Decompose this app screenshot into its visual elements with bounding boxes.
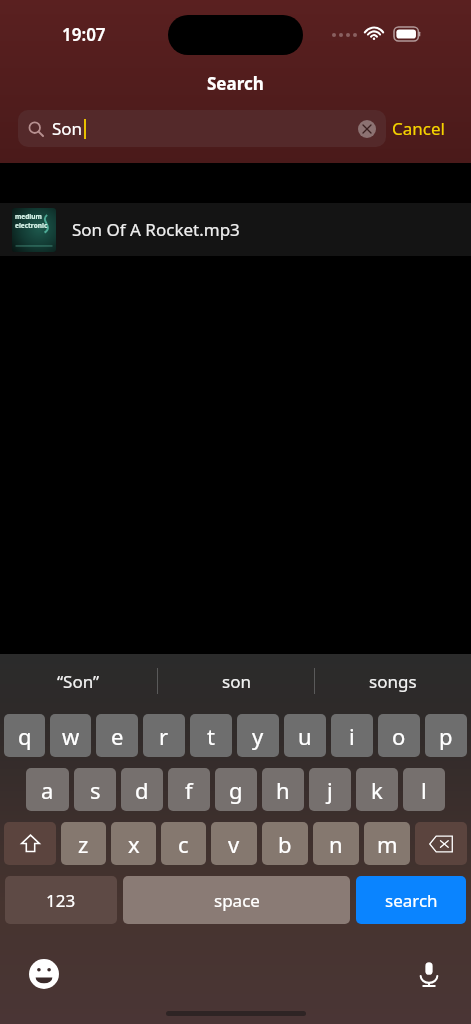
staticText: songs	[369, 670, 417, 693]
button[interactable]: v	[211, 822, 257, 865]
button[interactable]: Son	[18, 110, 386, 147]
button[interactable]: Emoji keyboard	[26, 956, 62, 992]
button[interactable]: o	[378, 714, 420, 757]
button[interactable]: f	[168, 768, 210, 811]
staticText: f	[185, 775, 193, 805]
staticText: w	[62, 721, 80, 751]
button[interactable]: b	[262, 822, 308, 865]
staticText: z	[78, 829, 89, 859]
staticText: m	[377, 829, 398, 859]
button[interactable]: k	[356, 768, 398, 811]
button[interactable]: Delete	[415, 822, 467, 865]
button[interactable]: search	[356, 876, 466, 924]
button[interactable]: Cancel	[392, 110, 462, 147]
button[interactable]: g	[215, 768, 257, 811]
staticText: u	[298, 721, 312, 751]
button[interactable]: space	[123, 876, 350, 924]
button[interactable]: “Son”	[0, 654, 157, 708]
button[interactable]: a	[26, 768, 69, 811]
staticText: x	[128, 829, 140, 859]
staticText: son	[222, 670, 251, 693]
button[interactable]: t	[190, 714, 232, 757]
staticText: “Son”	[57, 670, 100, 693]
staticText: j	[327, 775, 333, 805]
staticText: h	[276, 775, 290, 805]
button[interactable]: q	[4, 714, 45, 757]
button[interactable]: y	[237, 714, 279, 757]
staticText: k	[371, 775, 383, 805]
staticText: Son Of A Rocket.mp3	[72, 218, 240, 241]
button[interactable]: c	[161, 822, 206, 865]
staticText: v	[228, 829, 240, 859]
staticText: r	[159, 721, 169, 751]
staticText: electronic	[15, 221, 48, 230]
staticText: c	[178, 829, 189, 859]
staticText: e	[111, 721, 124, 751]
staticText: 19:07	[62, 23, 106, 46]
staticText: space	[214, 889, 260, 912]
button[interactable]: j	[309, 768, 351, 811]
staticText: Son	[52, 117, 83, 140]
staticText: l	[421, 775, 427, 805]
button[interactable]: 123	[5, 876, 117, 924]
staticText: a	[41, 775, 54, 805]
staticText: q	[18, 721, 32, 751]
staticText: Cancel	[392, 117, 445, 140]
button[interactable]: x	[111, 822, 156, 865]
staticText: o	[392, 721, 406, 751]
staticText: g	[229, 775, 243, 805]
button[interactable]: z	[61, 822, 106, 865]
staticText: 123	[46, 889, 76, 912]
button[interactable]: songs	[315, 654, 471, 708]
staticText: b	[278, 829, 292, 859]
button[interactable]: w	[50, 714, 91, 757]
staticText: y	[252, 721, 264, 751]
button[interactable]: p	[425, 714, 467, 757]
staticText: n	[329, 829, 343, 859]
button[interactable]: son	[158, 654, 314, 708]
button[interactable]: i	[331, 714, 373, 757]
button[interactable]: Dictation	[411, 956, 447, 992]
button[interactable]: d	[121, 768, 163, 811]
button[interactable]: l	[403, 768, 445, 811]
staticText: d	[135, 775, 149, 805]
button[interactable]: s	[74, 768, 116, 811]
button[interactable]: n	[313, 822, 359, 865]
button[interactable]: Shift	[4, 822, 56, 865]
staticText: s	[90, 775, 101, 805]
button[interactable]: medium	[0, 203, 471, 256]
staticText: i	[349, 721, 355, 751]
button[interactable]: Clear text	[358, 120, 376, 138]
staticText: t	[207, 721, 215, 751]
button[interactable]: m	[364, 822, 410, 865]
staticText: p	[439, 721, 453, 751]
button[interactable]: r	[143, 714, 185, 757]
staticText: search	[385, 889, 438, 912]
button[interactable]: h	[262, 768, 304, 811]
staticText: medium	[15, 212, 42, 221]
button[interactable]: u	[284, 714, 326, 757]
button[interactable]: e	[96, 714, 138, 757]
staticText: Search	[207, 72, 264, 95]
